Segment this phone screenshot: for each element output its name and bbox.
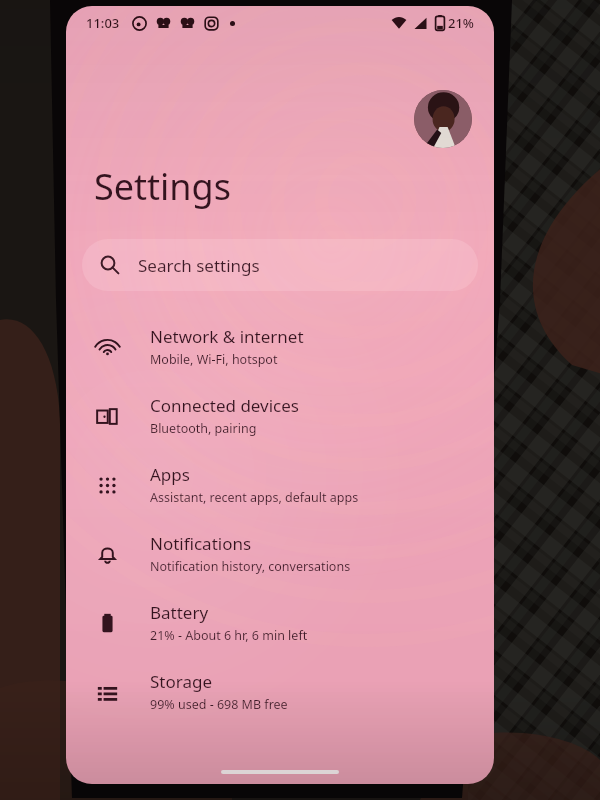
button[interactable]: Storage <box>66 670 494 713</box>
button[interactable]: Account avatar <box>414 90 472 148</box>
staticText: Connected devices <box>150 394 300 417</box>
staticText: Notification history, conversations <box>150 558 351 575</box>
staticText: Assistant, recent apps, default apps <box>150 489 359 506</box>
button[interactable]: Network & internet <box>66 325 494 368</box>
staticText: Bluetooth, pairing <box>150 420 257 437</box>
staticText: Network & internet <box>150 325 304 348</box>
button[interactable]: Apps <box>66 463 494 506</box>
staticText: Notifications <box>150 532 252 555</box>
button[interactable]: Notifications <box>66 532 494 575</box>
staticText: Settings <box>94 162 231 211</box>
staticText: Mobile, Wi-Fi, hotspot <box>150 351 278 368</box>
staticText: 21% - About 6 hr, 6 min left <box>150 627 308 644</box>
button[interactable]: Search settings <box>82 239 478 291</box>
button[interactable]: Connected devices <box>66 394 494 437</box>
staticText: Apps <box>150 463 190 486</box>
staticText: 21% <box>448 14 474 32</box>
staticText: Battery <box>150 601 209 624</box>
button[interactable]: Battery <box>66 601 494 644</box>
staticText: 11:03 <box>86 14 120 32</box>
staticText: 99% used - 698 MB free <box>150 696 288 713</box>
staticText: Search settings <box>138 254 260 277</box>
staticText: Storage <box>150 670 213 693</box>
